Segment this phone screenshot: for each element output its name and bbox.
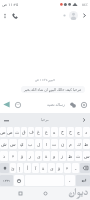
button[interactable]: ى: [48, 163, 55, 173]
staticText: ١١:٢٥ ص: [2, 2, 19, 8]
button[interactable]: ش: [0, 139, 8, 149]
button[interactable]: Clipboard: [2, 116, 10, 124]
button[interactable]: Back: [65, 188, 75, 198]
staticText: ث: [15, 130, 20, 135]
button[interactable]: ق: [21, 127, 27, 137]
staticText: ا: [46, 142, 48, 147]
button[interactable]: ج: [75, 127, 82, 137]
staticText: م: [69, 142, 72, 147]
staticText: و: [53, 154, 56, 159]
button[interactable]: ب: [27, 139, 34, 149]
button[interactable]: ح: [67, 127, 74, 137]
staticText: د: [85, 130, 88, 135]
button[interactable]: إ: [17, 163, 23, 173]
staticText: غ: [37, 130, 40, 135]
button[interactable]: ك: [75, 139, 82, 149]
staticText: ع: [45, 130, 48, 135]
button[interactable]: د: [83, 127, 90, 137]
staticText: آ: [35, 166, 37, 171]
button[interactable]: ض: [0, 127, 6, 137]
button[interactable]: ط: [83, 139, 90, 149]
button[interactable]: ة: [43, 151, 50, 161]
staticText: ن: [61, 142, 65, 147]
button[interactable]: ظ: [67, 151, 74, 161]
button[interactable]: Call: [9, 10, 20, 21]
button[interactable]: Recents: [15, 188, 25, 198]
button[interactable]: ل: [35, 139, 42, 149]
staticText: ئ: [11, 166, 15, 171]
button[interactable]: غ: [35, 127, 42, 137]
button[interactable]: مرحبا كيف حالك اليوم ان شاء الله بخير: [21, 86, 85, 93]
button[interactable]: ء: [64, 163, 71, 173]
button[interactable]: Back: [79, 10, 89, 20]
button[interactable]: ـ: [72, 163, 79, 173]
button[interactable]: Shift: [0, 163, 9, 173]
staticText: ى: [50, 166, 54, 171]
staticText: ت: [52, 142, 57, 147]
staticText: ض: [0, 130, 6, 135]
button[interactable]: ئ: [10, 163, 16, 173]
staticText: اليوم ١١:٢٥ ص: [35, 78, 55, 82]
button[interactable]: ي: [18, 139, 26, 149]
button[interactable]: Numbers: [0, 175, 13, 186]
button[interactable]: ء: [9, 151, 17, 161]
button[interactable]: و: [51, 151, 58, 161]
staticText: ة: [45, 154, 48, 159]
button[interactable]: ذ: [0, 151, 8, 161]
staticText: ص: [7, 130, 13, 135]
staticText: مرحبا كيف حالك اليوم ان شاء الله بخير: [24, 87, 82, 92]
button[interactable]: ؤ: [18, 151, 26, 161]
button[interactable]: ع: [43, 127, 50, 137]
button[interactable]: ه: [51, 127, 58, 137]
button[interactable]: ر: [27, 151, 34, 161]
staticText: ف: [29, 130, 34, 135]
staticText: ح: [69, 130, 72, 135]
button[interactable]: ز: [59, 151, 66, 161]
button[interactable]: ث: [75, 151, 82, 161]
staticText: ء: [12, 154, 15, 159]
staticText: س: [84, 154, 90, 159]
button[interactable]: ن: [59, 139, 66, 149]
staticText: ب: [28, 142, 33, 147]
staticText: س: [10, 142, 16, 147]
staticText: ة: [42, 166, 45, 171]
button[interactable]: ص: [7, 127, 13, 137]
button[interactable]: ة: [40, 163, 47, 173]
button[interactable]: ف: [28, 127, 34, 137]
button[interactable]: ا: [43, 139, 50, 149]
staticText: ل: [37, 142, 41, 147]
button[interactable]: More options: [1, 10, 9, 21]
button[interactable]: ؤ: [56, 163, 63, 173]
button[interactable]: س: [83, 151, 90, 161]
button[interactable]: Add attachment: [78, 99, 89, 110]
button[interactable]: ث: [14, 127, 20, 137]
button[interactable]: Emoji: [12, 99, 23, 110]
button[interactable]: آ: [32, 163, 39, 173]
staticText: ي: [20, 142, 24, 147]
button[interactable]: Backspace: [80, 163, 90, 173]
button[interactable]: ى: [35, 151, 42, 161]
staticText: ديوان: [68, 188, 89, 200]
staticText: ط: [84, 142, 89, 147]
button[interactable]: Home: [40, 188, 50, 198]
button[interactable]: Send: [1, 99, 12, 110]
button[interactable]: More suggestions: [80, 116, 88, 124]
button[interactable]: خ: [59, 127, 66, 137]
button[interactable]: Attach image: [67, 99, 78, 110]
staticText: ذ: [3, 154, 6, 159]
button[interactable]: س: [9, 139, 17, 149]
button[interactable]: Emoji: [14, 175, 24, 186]
staticText: ث: [76, 154, 81, 159]
button[interactable]: ،: [65, 175, 75, 186]
button[interactable]: Enter: [76, 175, 90, 186]
button[interactable]: أ: [24, 163, 31, 173]
button[interactable]: ت: [51, 139, 58, 149]
button[interactable]: م: [67, 139, 74, 149]
staticText: ر: [29, 154, 32, 159]
staticText: ؟١٢٣: [3, 179, 10, 183]
button[interactable]: Contact avatar: [67, 9, 79, 21]
staticText: ء: [66, 166, 69, 171]
staticText: ٨٤٪: [82, 3, 88, 7]
staticText: ؤ: [21, 154, 24, 159]
